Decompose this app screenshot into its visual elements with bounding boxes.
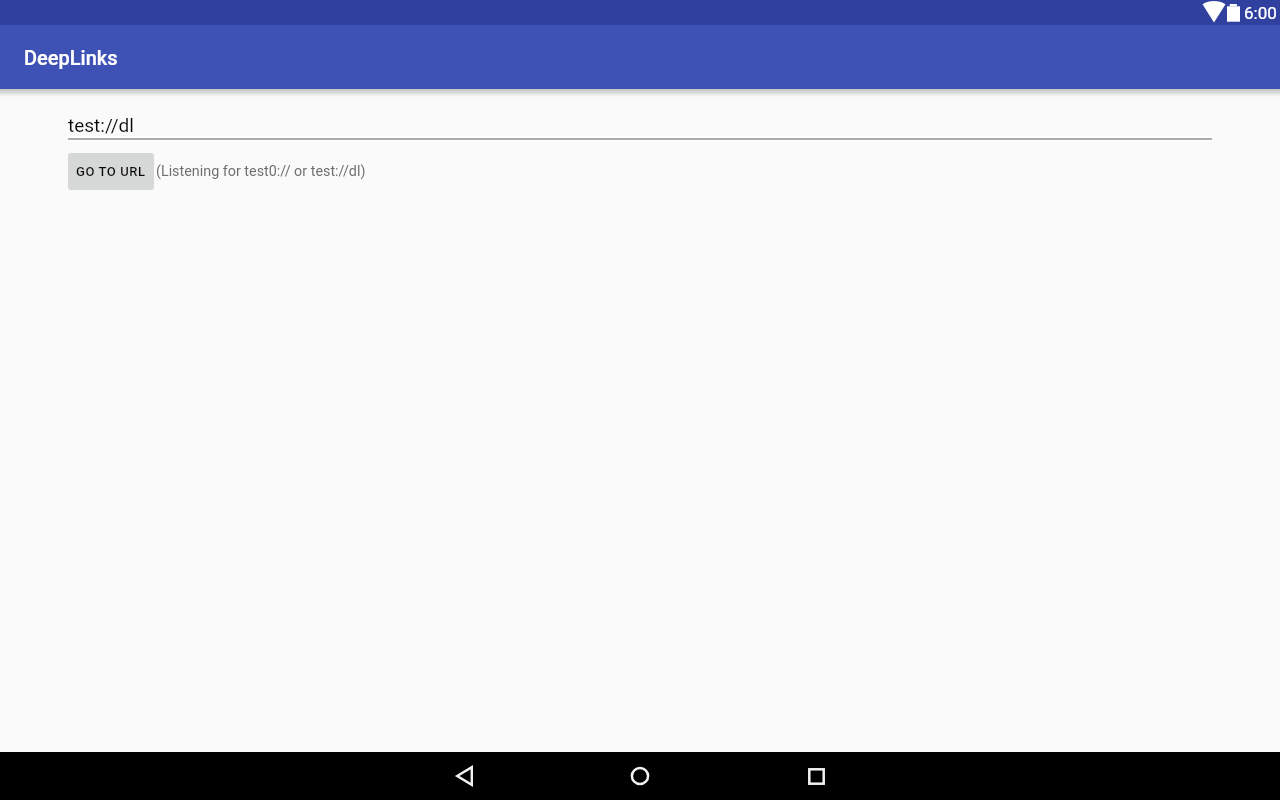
button[interactable]: Home [616,752,664,800]
button[interactable]: Back [312,752,616,800]
staticText: 6:00 [1244,3,1277,23]
button[interactable]: GO TO URL [68,153,154,190]
button[interactable]: Recents [664,752,968,800]
button[interactable]: test://dl [68,112,1212,141]
staticText: GO TO URL [76,164,146,179]
staticText: test://dl [68,114,134,136]
staticText: (Listening for test0:// or test://dl) [156,163,366,180]
staticText: DeepLinks [24,46,118,69]
